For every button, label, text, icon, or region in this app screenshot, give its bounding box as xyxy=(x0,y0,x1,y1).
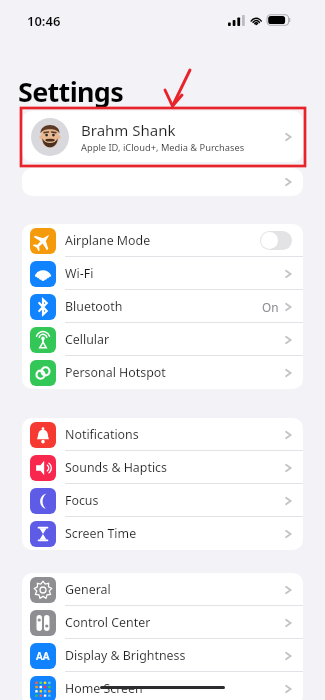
button[interactable]: Notifications xyxy=(22,418,303,451)
button[interactable]: AA xyxy=(22,639,303,672)
staticText: AA xyxy=(36,649,50,663)
button[interactable]: Home Screen xyxy=(22,672,303,700)
staticText: Personal Hotspot xyxy=(65,364,166,381)
button[interactable]: Airplane Mode toggle, off xyxy=(260,231,292,250)
button[interactable]: Airplane Mode xyxy=(22,224,303,257)
staticText: Settings xyxy=(18,73,124,110)
staticText: Apple ID, iCloud+, Media & Purchases xyxy=(81,141,245,154)
staticText: Screen Time xyxy=(65,525,137,542)
staticText: Airplane Mode xyxy=(65,232,151,249)
staticText: General xyxy=(65,581,111,598)
staticText: Brahm Shank xyxy=(81,120,176,140)
button[interactable]: Focus xyxy=(22,484,303,517)
button[interactable] xyxy=(22,168,303,196)
staticText: Home Screen xyxy=(65,680,143,697)
staticText: Cellular xyxy=(65,331,110,348)
button[interactable]: Brahm Shank xyxy=(22,111,303,162)
staticText: Wi-Fi xyxy=(65,265,94,282)
button[interactable]: Bluetooth xyxy=(22,290,303,323)
button[interactable]: Cellular xyxy=(22,323,303,356)
button[interactable]: Sounds & Haptics xyxy=(22,451,303,484)
staticText: Display & Brightness xyxy=(65,647,186,664)
button[interactable]: Control Center xyxy=(22,606,303,639)
button[interactable]: Wi-Fi xyxy=(22,257,303,290)
staticText: On xyxy=(262,299,279,315)
staticText: Sounds & Haptics xyxy=(65,459,167,476)
button[interactable]: General xyxy=(22,573,303,606)
button[interactable]: Screen Time xyxy=(22,517,303,550)
staticText: Focus xyxy=(65,492,99,509)
staticText: 10:46 xyxy=(27,12,61,30)
button[interactable]: Personal Hotspot xyxy=(22,356,303,389)
staticText: Bluetooth xyxy=(65,298,123,315)
staticText: Notifications xyxy=(65,426,139,443)
staticText: Control Center xyxy=(65,614,151,631)
